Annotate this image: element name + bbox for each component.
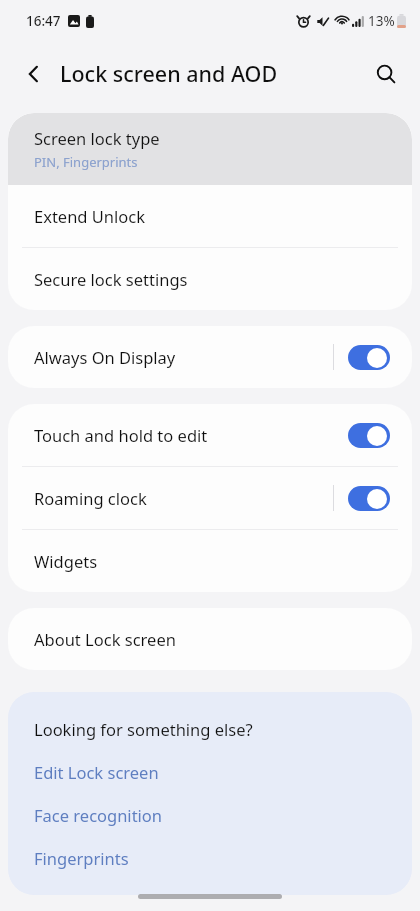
button[interactable]: Face recognition (34, 804, 163, 826)
button[interactable]: Screen lock type (8, 113, 412, 185)
staticText: Looking for something else? (34, 718, 253, 740)
button[interactable]: Roaming clock (8, 467, 412, 529)
staticText: Always On Display (34, 346, 333, 368)
button[interactable]: Toggle, on (348, 423, 390, 448)
button[interactable]: Touch and hold to edit (8, 404, 412, 466)
button[interactable]: Always On Display (8, 326, 412, 388)
button[interactable]: Widgets (8, 530, 412, 592)
button[interactable]: Edit Lock screen (34, 761, 159, 783)
staticText: Edit Lock screen (34, 761, 159, 783)
button[interactable]: Secure lock settings (8, 248, 412, 310)
staticText: Touch and hold to edit (34, 424, 348, 446)
button[interactable]: Toggle, on (348, 345, 390, 370)
staticText: Face recognition (34, 804, 163, 826)
staticText: Extend Unlock (34, 205, 146, 227)
staticText: PIN, Fingerprints (34, 153, 138, 171)
staticText: 13% (368, 12, 395, 30)
button[interactable]: About Lock screen (8, 608, 412, 670)
staticText: Secure lock settings (34, 268, 188, 290)
button[interactable]: Back (12, 52, 56, 96)
staticText: Screen lock type (34, 127, 160, 149)
button[interactable]: Fingerprints (34, 847, 129, 869)
staticText: About Lock screen (34, 628, 176, 650)
staticText: Fingerprints (34, 847, 129, 869)
button[interactable]: Toggle, on (348, 486, 390, 511)
staticText: Roaming clock (34, 487, 333, 509)
staticText: 16:47 (26, 12, 61, 30)
staticText: Widgets (34, 550, 98, 572)
staticText: Lock screen and AOD (60, 59, 278, 88)
button[interactable]: Extend Unlock (8, 185, 412, 247)
button[interactable]: Search (364, 52, 408, 96)
